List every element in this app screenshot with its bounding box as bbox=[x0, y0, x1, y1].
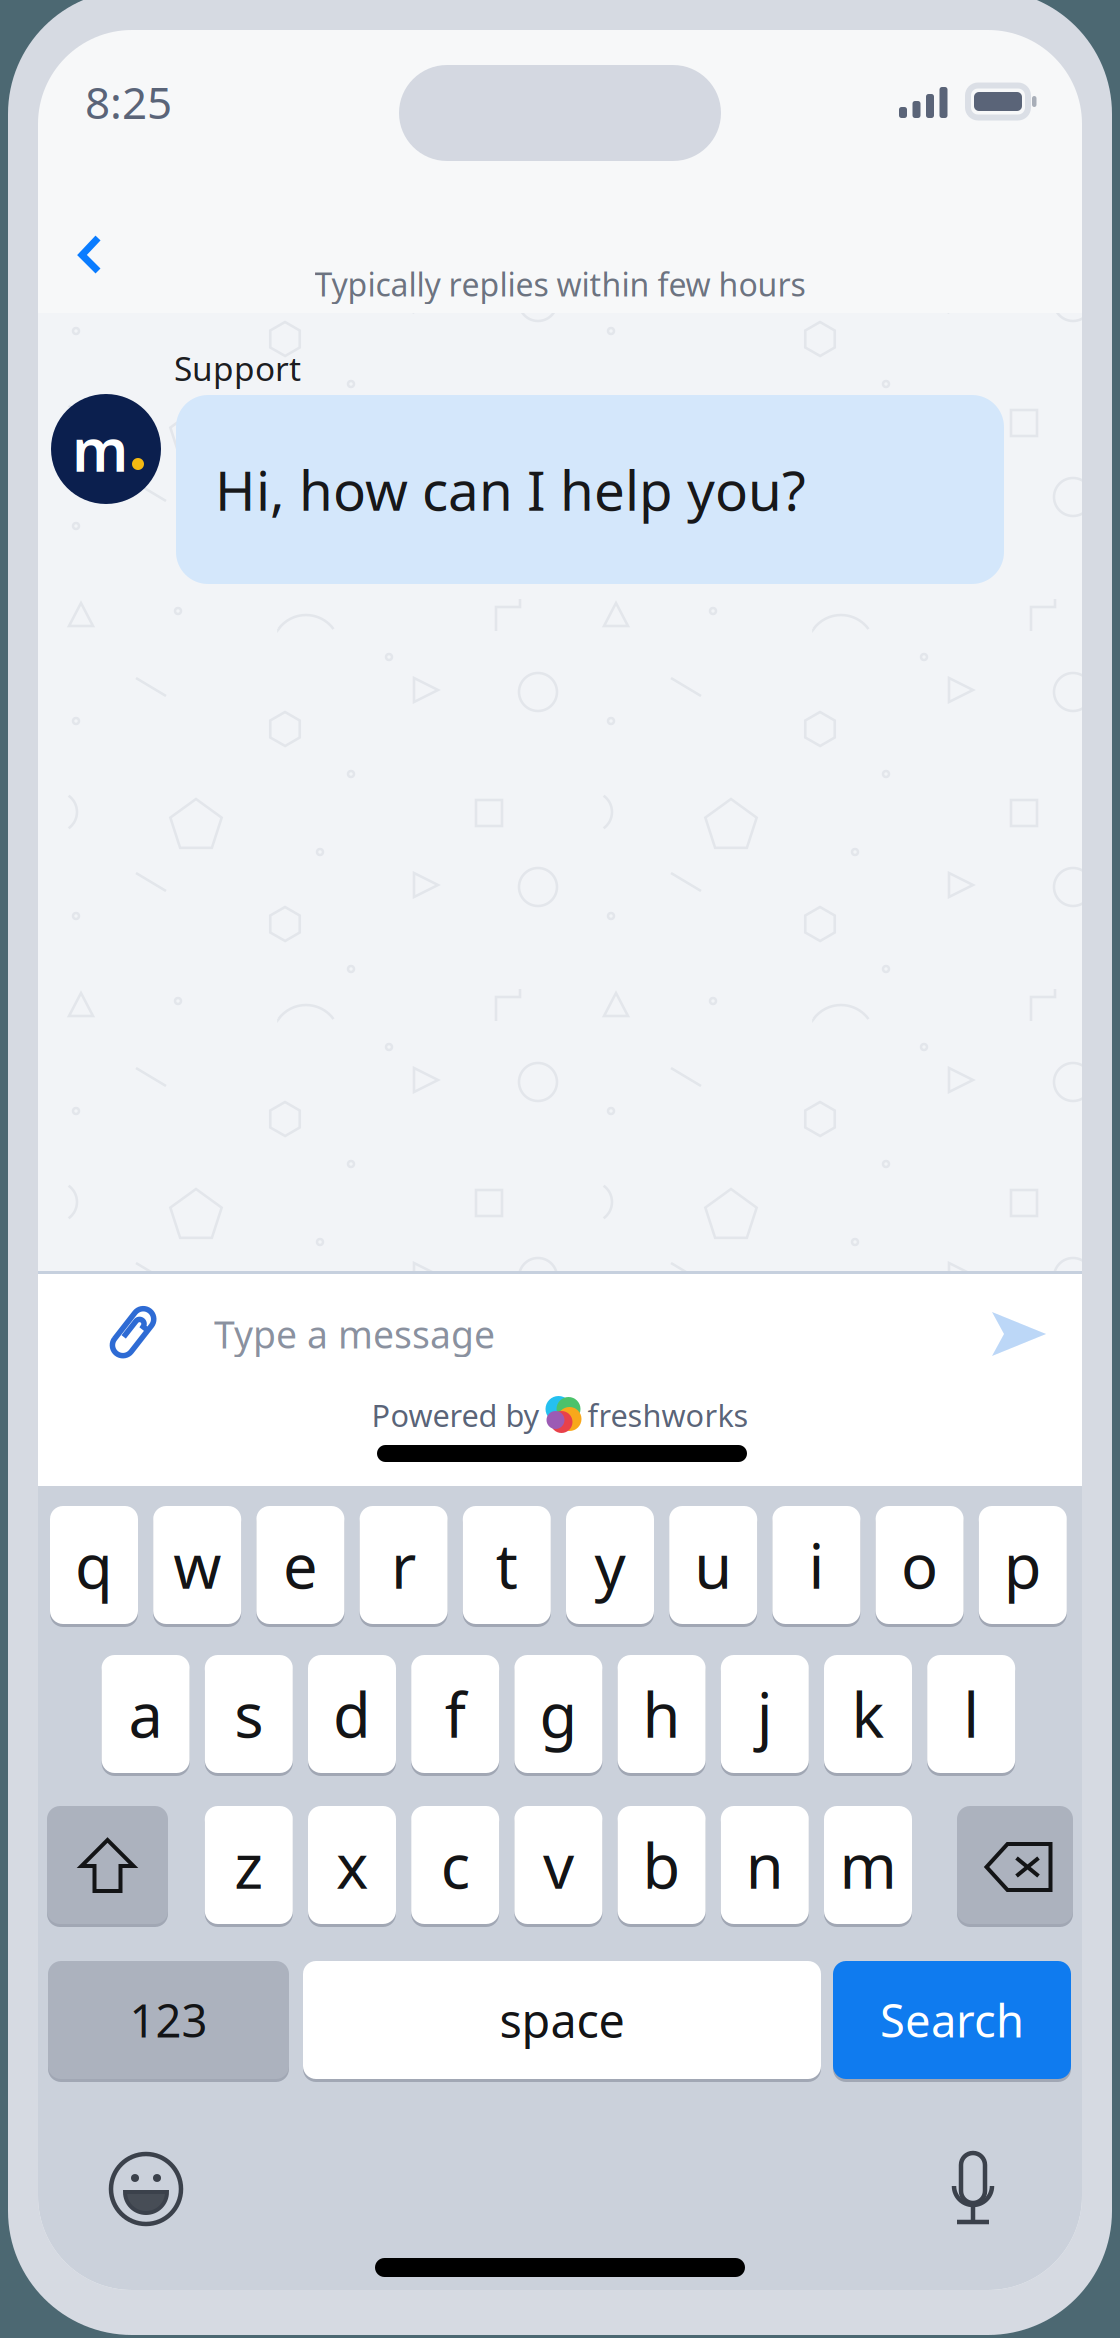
button[interactable]: Emoji keyboard bbox=[0, 0, 1120, 2338]
button[interactable]: y bbox=[566, 1504, 654, 1625]
staticText: Support bbox=[174, 346, 301, 390]
button[interactable]: n bbox=[721, 1804, 809, 1925]
button[interactable]: Attach file bbox=[0, 0, 1120, 2338]
button[interactable]: 123 bbox=[48, 1959, 289, 2080]
button[interactable]: j bbox=[721, 1653, 809, 1774]
staticText: Hi, how can I help you? bbox=[215, 453, 806, 526]
staticText: j bbox=[757, 1673, 773, 1755]
staticText: x bbox=[336, 1824, 368, 1906]
staticText: q bbox=[75, 1524, 113, 1606]
button[interactable]: space bbox=[303, 1959, 821, 2080]
staticText: t bbox=[496, 1524, 518, 1606]
staticText: Powered by bbox=[371, 1395, 539, 1435]
button[interactable]: h bbox=[618, 1653, 706, 1774]
staticText: Typically replies within few hours bbox=[314, 263, 805, 305]
staticText: y bbox=[594, 1524, 625, 1606]
button[interactable]: b bbox=[618, 1804, 706, 1925]
staticText: 8:25 bbox=[85, 73, 172, 131]
button[interactable]: l bbox=[927, 1653, 1015, 1774]
staticText: p bbox=[1004, 1524, 1042, 1606]
button[interactable]: Send message bbox=[0, 0, 1120, 2338]
staticText: m bbox=[839, 1824, 896, 1906]
staticText: Search bbox=[880, 1990, 1024, 2050]
button[interactable]: Search bbox=[833, 1959, 1071, 2080]
staticText: h bbox=[643, 1673, 681, 1755]
button[interactable]: Back bbox=[0, 0, 1120, 2338]
staticText: v bbox=[543, 1824, 574, 1906]
button[interactable]: c bbox=[411, 1804, 499, 1925]
staticText: f bbox=[445, 1673, 466, 1755]
button[interactable]: d bbox=[308, 1653, 396, 1774]
button[interactable]: r bbox=[360, 1504, 448, 1625]
button[interactable] bbox=[957, 1804, 1073, 1925]
staticText: Type a message bbox=[214, 1309, 495, 1359]
staticText: r bbox=[391, 1524, 416, 1606]
button[interactable]: w bbox=[153, 1504, 241, 1625]
button[interactable]: a bbox=[102, 1653, 190, 1774]
staticText: a bbox=[129, 1673, 163, 1755]
staticText: n bbox=[746, 1824, 784, 1906]
button[interactable]: s bbox=[205, 1653, 293, 1774]
staticText: c bbox=[441, 1824, 470, 1906]
staticText: 123 bbox=[129, 1990, 207, 2050]
button[interactable]: Type a message bbox=[0, 0, 1120, 2338]
button[interactable]: u bbox=[669, 1504, 757, 1625]
staticText: u bbox=[694, 1524, 732, 1606]
staticText: space bbox=[499, 1989, 624, 2051]
staticText: m bbox=[72, 410, 128, 488]
staticText: freshworks bbox=[587, 1395, 748, 1435]
button[interactable]: i bbox=[772, 1504, 860, 1625]
staticText: z bbox=[234, 1824, 263, 1906]
staticText: b bbox=[643, 1824, 681, 1906]
staticText: o bbox=[901, 1524, 938, 1606]
staticText: g bbox=[539, 1673, 577, 1755]
button[interactable] bbox=[47, 1804, 168, 1925]
button[interactable]: t bbox=[463, 1504, 551, 1625]
button[interactable]: m bbox=[824, 1804, 912, 1925]
staticText: d bbox=[333, 1673, 371, 1755]
button[interactable]: p bbox=[979, 1504, 1067, 1625]
staticText: i bbox=[808, 1524, 824, 1606]
staticText: k bbox=[851, 1673, 884, 1755]
staticText: l bbox=[963, 1673, 979, 1755]
button[interactable]: v bbox=[514, 1804, 602, 1925]
staticText: w bbox=[173, 1524, 221, 1606]
staticText: e bbox=[283, 1524, 318, 1606]
button[interactable]: x bbox=[308, 1804, 396, 1925]
button[interactable]: k bbox=[824, 1653, 912, 1774]
button[interactable]: q bbox=[50, 1504, 138, 1625]
staticText: s bbox=[234, 1673, 263, 1755]
button[interactable]: z bbox=[205, 1804, 293, 1925]
button[interactable]: e bbox=[256, 1504, 344, 1625]
button[interactable]: Dictate bbox=[0, 0, 1120, 2338]
button[interactable]: g bbox=[514, 1653, 602, 1774]
button[interactable]: o bbox=[876, 1504, 964, 1625]
button[interactable]: f bbox=[411, 1653, 499, 1774]
